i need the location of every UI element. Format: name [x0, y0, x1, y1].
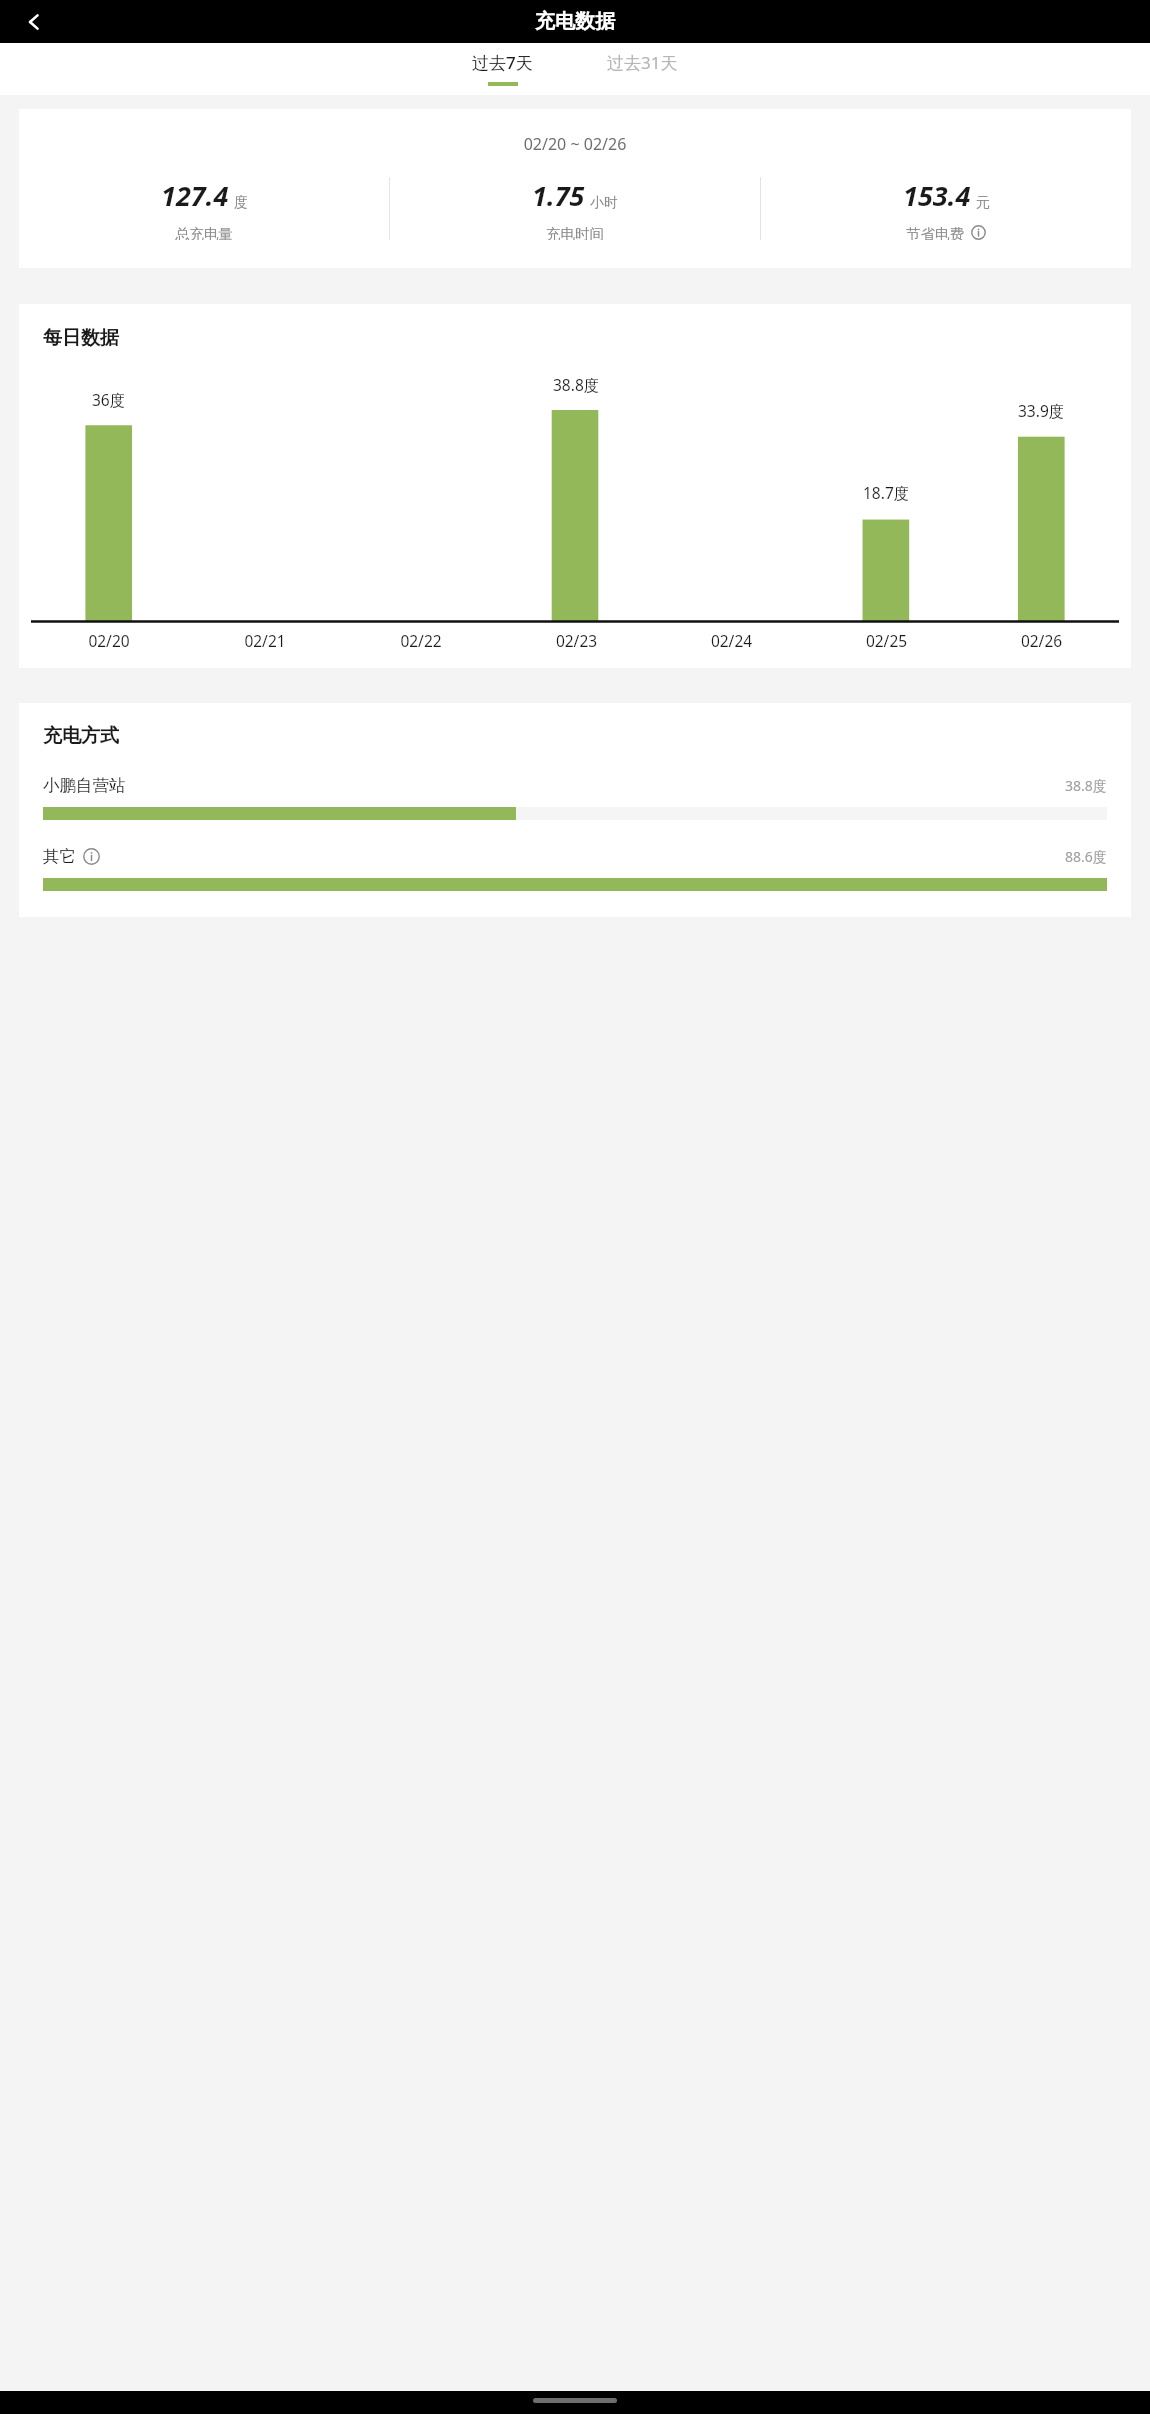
button[interactable]: Back	[12, 0, 56, 43]
staticText: 节省电费	[906, 225, 964, 240]
button[interactable]: 1.75	[390, 177, 760, 240]
staticText: 充电数据	[535, 9, 615, 34]
staticText: 02/22	[343, 630, 499, 651]
staticText: 18.7度	[863, 482, 910, 503]
staticText: 小时	[590, 194, 618, 212]
staticText: 02/25	[809, 630, 964, 651]
staticText: 02/23	[499, 630, 654, 651]
button[interactable]: 153.4	[761, 177, 1131, 240]
staticText: 元	[976, 194, 990, 212]
staticText: 38.8度	[1065, 776, 1107, 795]
staticText: 总充电量	[175, 225, 233, 240]
staticText: 02/24	[654, 630, 809, 651]
staticText: 36度	[92, 389, 126, 410]
staticText: 充电方式	[43, 724, 119, 748]
staticText: 过去31天	[607, 51, 678, 74]
staticText: 小鹏自营站	[43, 775, 126, 796]
button[interactable]: 小鹏自营站	[19, 775, 1131, 820]
button[interactable]: 127.4	[19, 177, 389, 240]
staticText: 38.8度	[553, 374, 600, 395]
button[interactable]: 其它	[19, 846, 1131, 891]
staticText: 每日数据	[43, 326, 119, 350]
button[interactable]: 过去7天	[466, 43, 539, 86]
staticText: 充电时间	[546, 225, 604, 240]
staticText: 过去7天	[472, 51, 533, 74]
staticText: 153.4	[903, 177, 971, 214]
staticText: 127.4	[161, 177, 229, 214]
staticText: 1.75	[532, 177, 585, 214]
staticText: 02/20	[31, 630, 187, 651]
staticText: 02/20 ~ 02/26	[19, 133, 1131, 155]
staticText: 88.6度	[1065, 847, 1107, 866]
staticText: 其它	[43, 846, 76, 867]
staticText: 33.9度	[1018, 400, 1065, 421]
button[interactable]: 过去31天	[601, 43, 684, 86]
staticText: 02/21	[187, 630, 343, 651]
button[interactable]: More information	[970, 225, 987, 240]
staticText: 度	[234, 194, 248, 212]
staticText: 02/26	[964, 630, 1119, 651]
button[interactable]: More information	[83, 848, 100, 865]
